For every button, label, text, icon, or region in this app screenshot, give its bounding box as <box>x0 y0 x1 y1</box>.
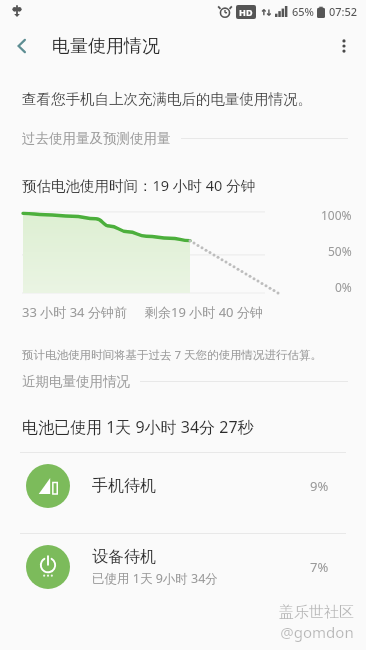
staticText: 盖乐世社区 <box>279 603 354 622</box>
staticText: 设备待机 <box>92 547 156 567</box>
staticText: 100% <box>321 207 352 223</box>
staticText: 手机待机 <box>92 476 156 496</box>
staticText: 预计电池使用时间将基于过去 7 天您的使用情况进行估算。 <box>22 347 323 363</box>
staticText: 已使用 1天 9小时 34分 <box>92 570 218 587</box>
button[interactable]: More options <box>322 24 366 68</box>
staticText: 9% <box>310 477 344 495</box>
staticText: HD <box>239 6 253 18</box>
staticText: 近期电量使用情况 <box>22 373 130 390</box>
staticText: 过去使用量及预测使用量 <box>22 130 171 147</box>
staticText: 剩余19 小时 40 分钟 <box>145 303 263 321</box>
staticText: 电池已使用 1天 9小时 34分 27秒 <box>22 416 254 438</box>
staticText: 查看您手机自上次充满电后的电量使用情况。 <box>22 90 312 108</box>
staticText: 65% <box>292 4 314 19</box>
button[interactable]: 设备待机 <box>0 534 366 600</box>
staticText: 07:52 <box>329 4 358 19</box>
button[interactable]: 手机待机 <box>0 453 366 519</box>
staticText: 7% <box>310 558 344 576</box>
staticText: 50% <box>328 243 352 259</box>
staticText: @gomdon <box>280 622 354 642</box>
staticText: 电量使用情况 <box>52 35 160 58</box>
button[interactable]: Back <box>0 24 44 68</box>
staticText: 预估电池使用时间：19 小时 40 分钟 <box>22 175 255 195</box>
staticText: 33 小时 34 分钟前 <box>22 303 127 321</box>
staticText: 0% <box>335 279 352 295</box>
